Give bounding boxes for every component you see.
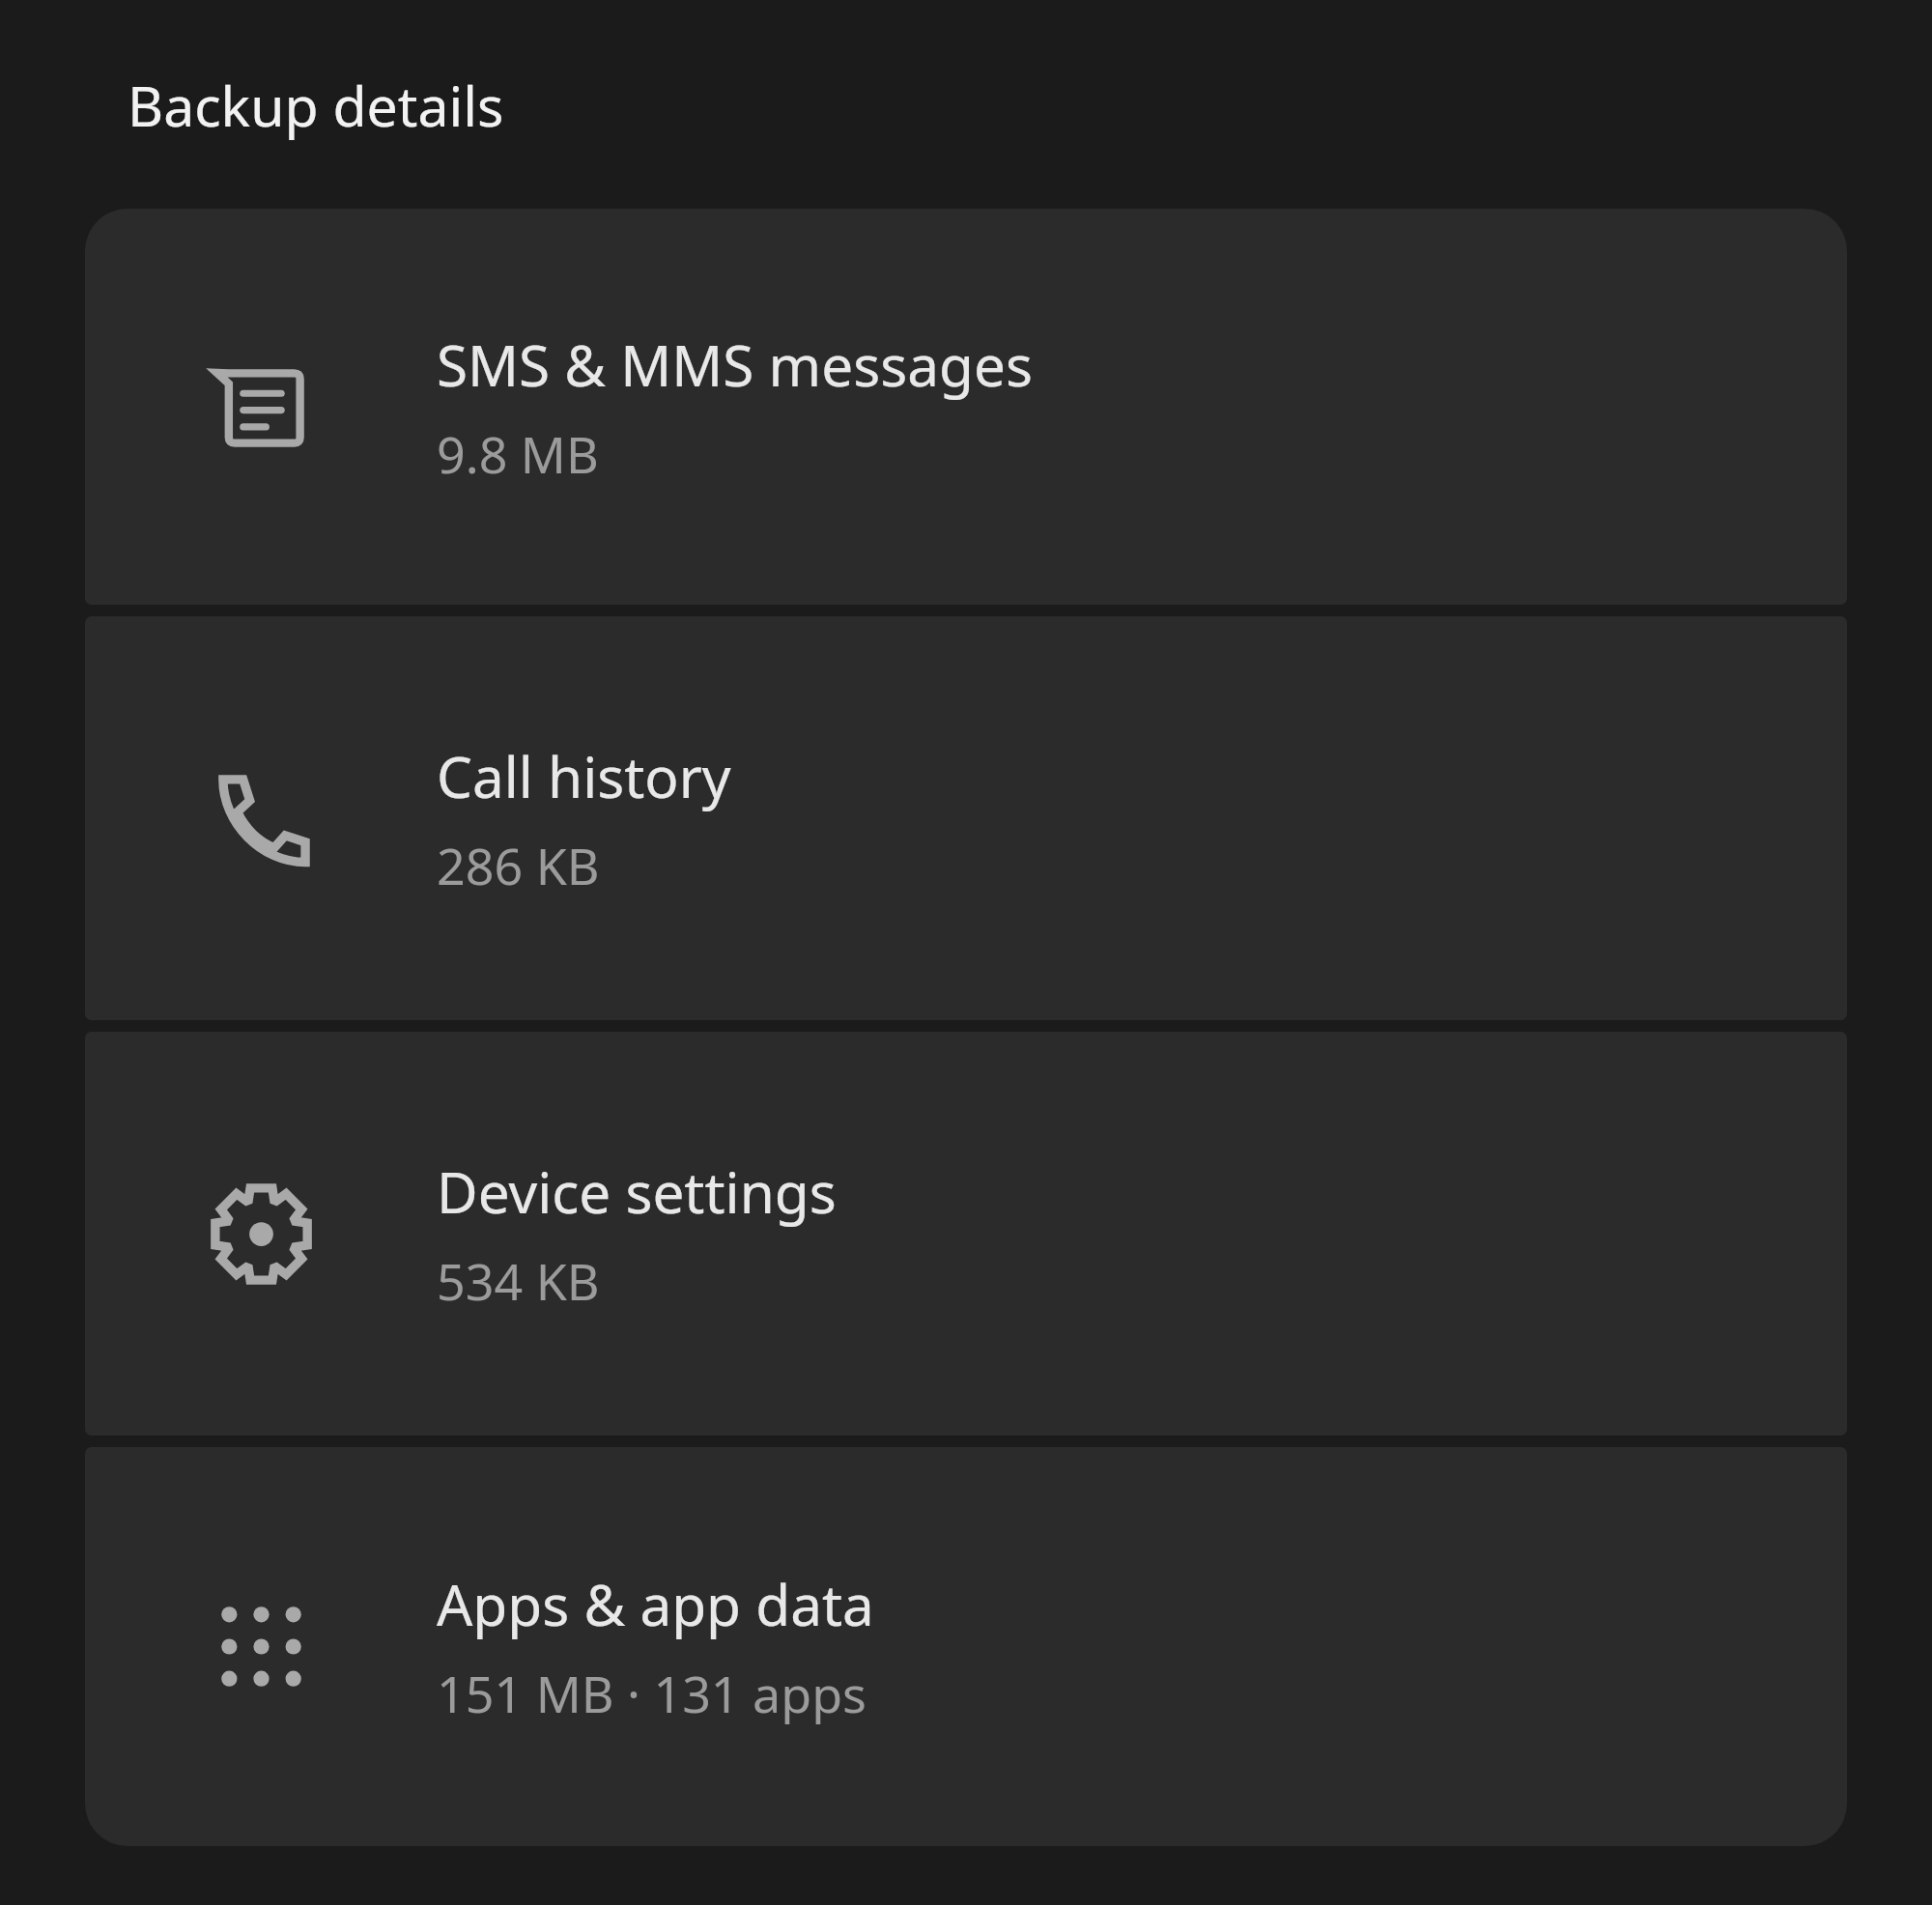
staticText: SMS & MMS messages xyxy=(437,327,1033,404)
button[interactable]: Device settings xyxy=(85,1032,1847,1436)
staticText: Backup details xyxy=(128,68,504,143)
other: Apps and app data xyxy=(85,1447,437,1846)
other: Call history xyxy=(85,616,437,1020)
staticText: 151 MB · 131 apps xyxy=(437,1659,867,1727)
staticText: 534 KB xyxy=(437,1246,600,1315)
staticText: Device settings xyxy=(437,1153,837,1231)
staticText: Call history xyxy=(437,738,731,815)
staticText: Apps & app data xyxy=(437,1566,874,1643)
button[interactable]: Call history xyxy=(85,616,1847,1020)
other: Device settings xyxy=(85,1032,437,1436)
staticText: 286 KB xyxy=(437,831,600,899)
button[interactable]: Apps and app data xyxy=(85,1447,1847,1846)
button[interactable]: SMS and MMS messages xyxy=(85,209,1847,605)
staticText: 9.8 MB xyxy=(437,419,599,488)
other: SMS and MMS messages xyxy=(85,209,437,605)
